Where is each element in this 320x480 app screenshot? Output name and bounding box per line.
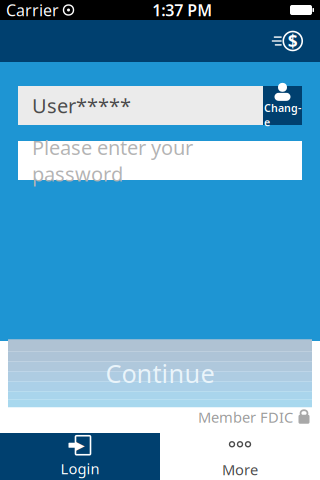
button[interactable]: Transfer money xyxy=(262,20,312,62)
staticText: Continue xyxy=(105,356,214,390)
staticText: Carrier xyxy=(6,0,59,21)
staticText: Login xyxy=(60,459,99,478)
staticText: More xyxy=(222,460,258,479)
staticText: Please enter your password xyxy=(32,134,193,187)
staticText: User***** xyxy=(32,92,131,119)
staticText: 1:37 PM xyxy=(152,0,212,21)
button[interactable]: Continue xyxy=(8,344,312,402)
staticText: Change xyxy=(264,101,301,129)
staticText: Member FDIC xyxy=(198,407,293,427)
button[interactable]: ▶ xyxy=(0,433,160,480)
button[interactable]: More xyxy=(160,433,320,480)
staticText: ▶ xyxy=(75,438,84,452)
staticText: $ xyxy=(288,29,298,52)
button[interactable]: Change xyxy=(263,86,302,125)
